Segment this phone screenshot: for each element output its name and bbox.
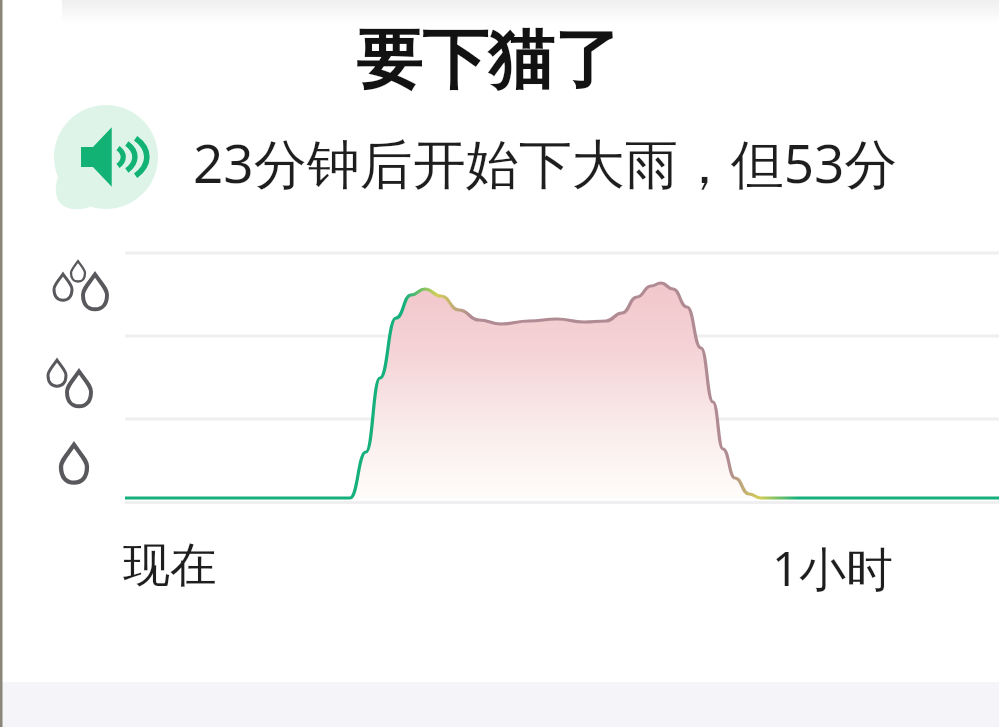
button[interactable]: Sound alert <box>54 105 158 209</box>
staticText: 23分钟后开始下大雨，但53分 <box>193 126 898 198</box>
staticText: 要下猫了 <box>356 18 620 101</box>
staticText: 现在 <box>123 536 217 595</box>
staticText: 1小时 <box>772 536 893 600</box>
